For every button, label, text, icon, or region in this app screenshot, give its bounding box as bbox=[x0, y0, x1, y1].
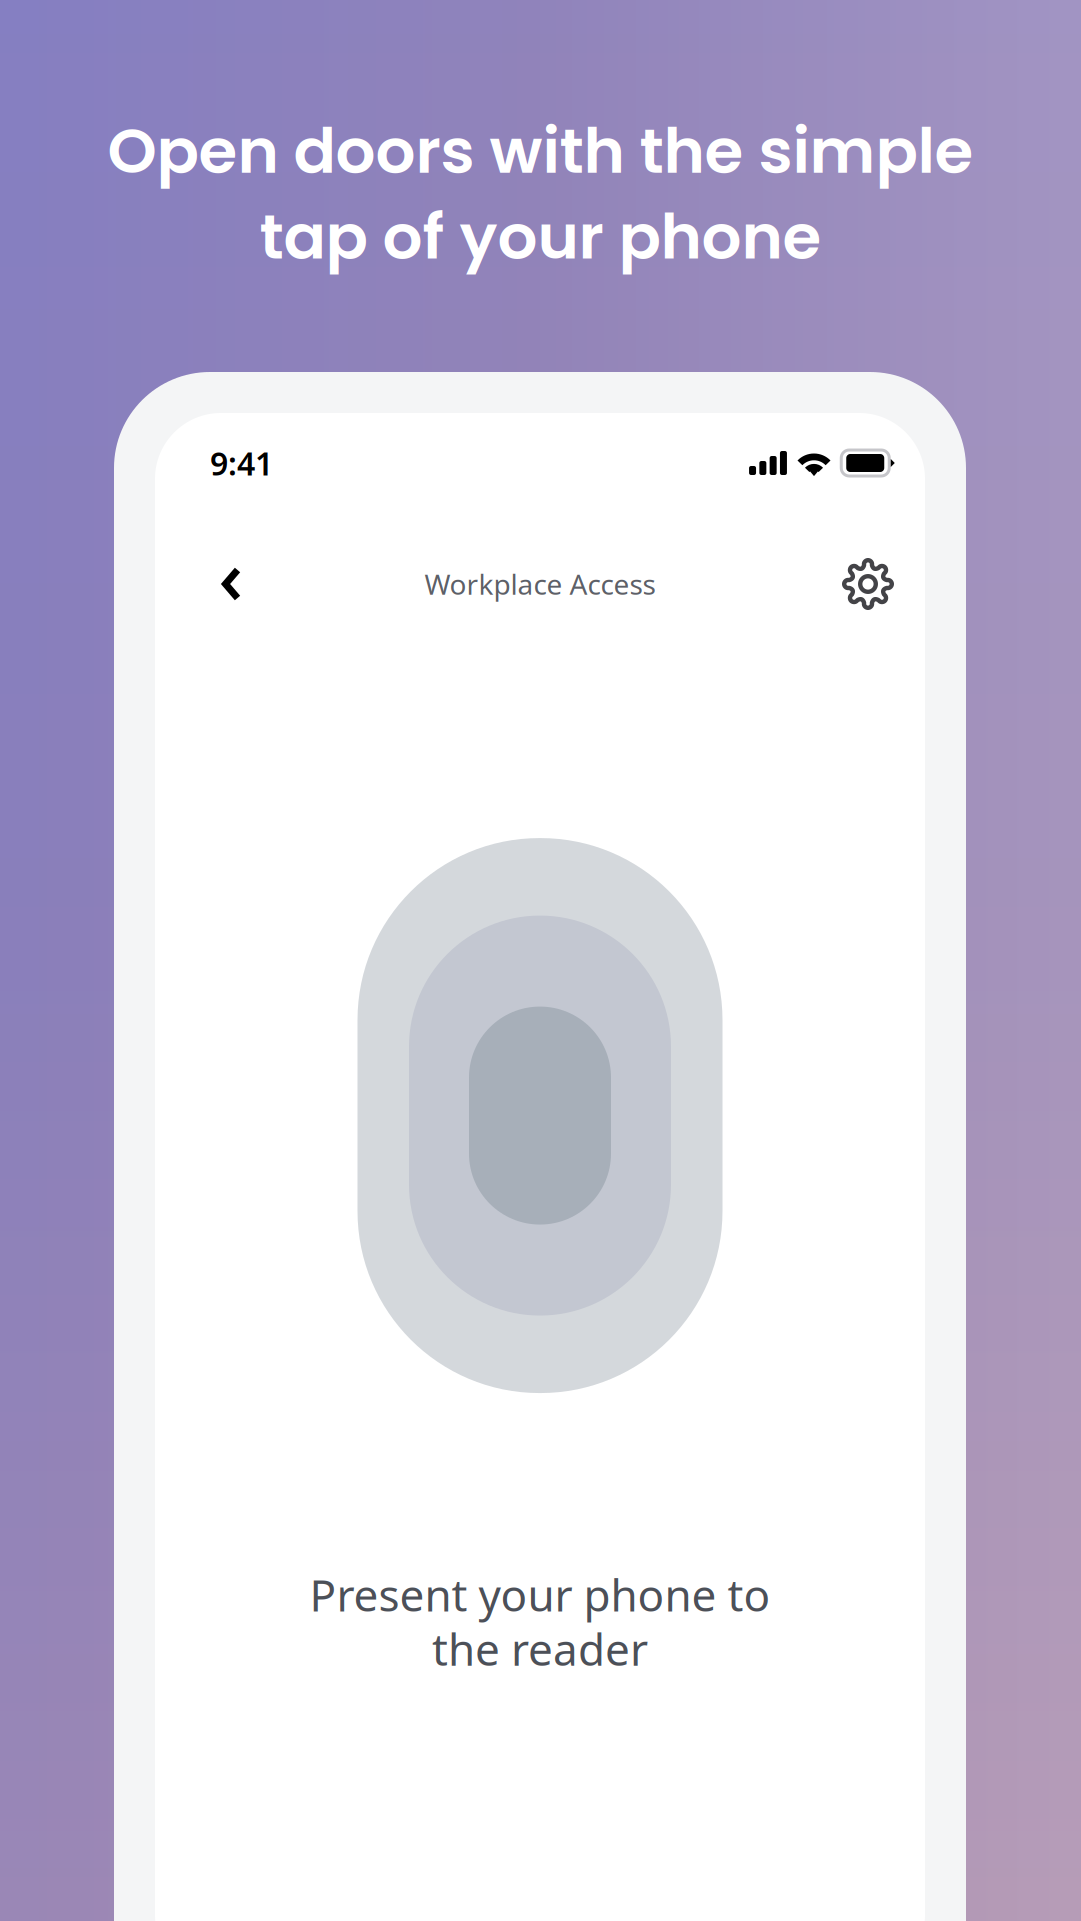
staticText: Workplace Access bbox=[424, 565, 655, 603]
button[interactable]: Back bbox=[207, 555, 256, 612]
staticText: the reader bbox=[432, 1620, 648, 1678]
staticText: 9:41 bbox=[210, 442, 273, 484]
staticText: tap of your phone bbox=[259, 193, 821, 280]
staticText: Open doors with the simple bbox=[107, 107, 973, 195]
button[interactable]: Settings bbox=[834, 550, 902, 618]
staticText: Present your phone to bbox=[309, 1565, 770, 1623]
